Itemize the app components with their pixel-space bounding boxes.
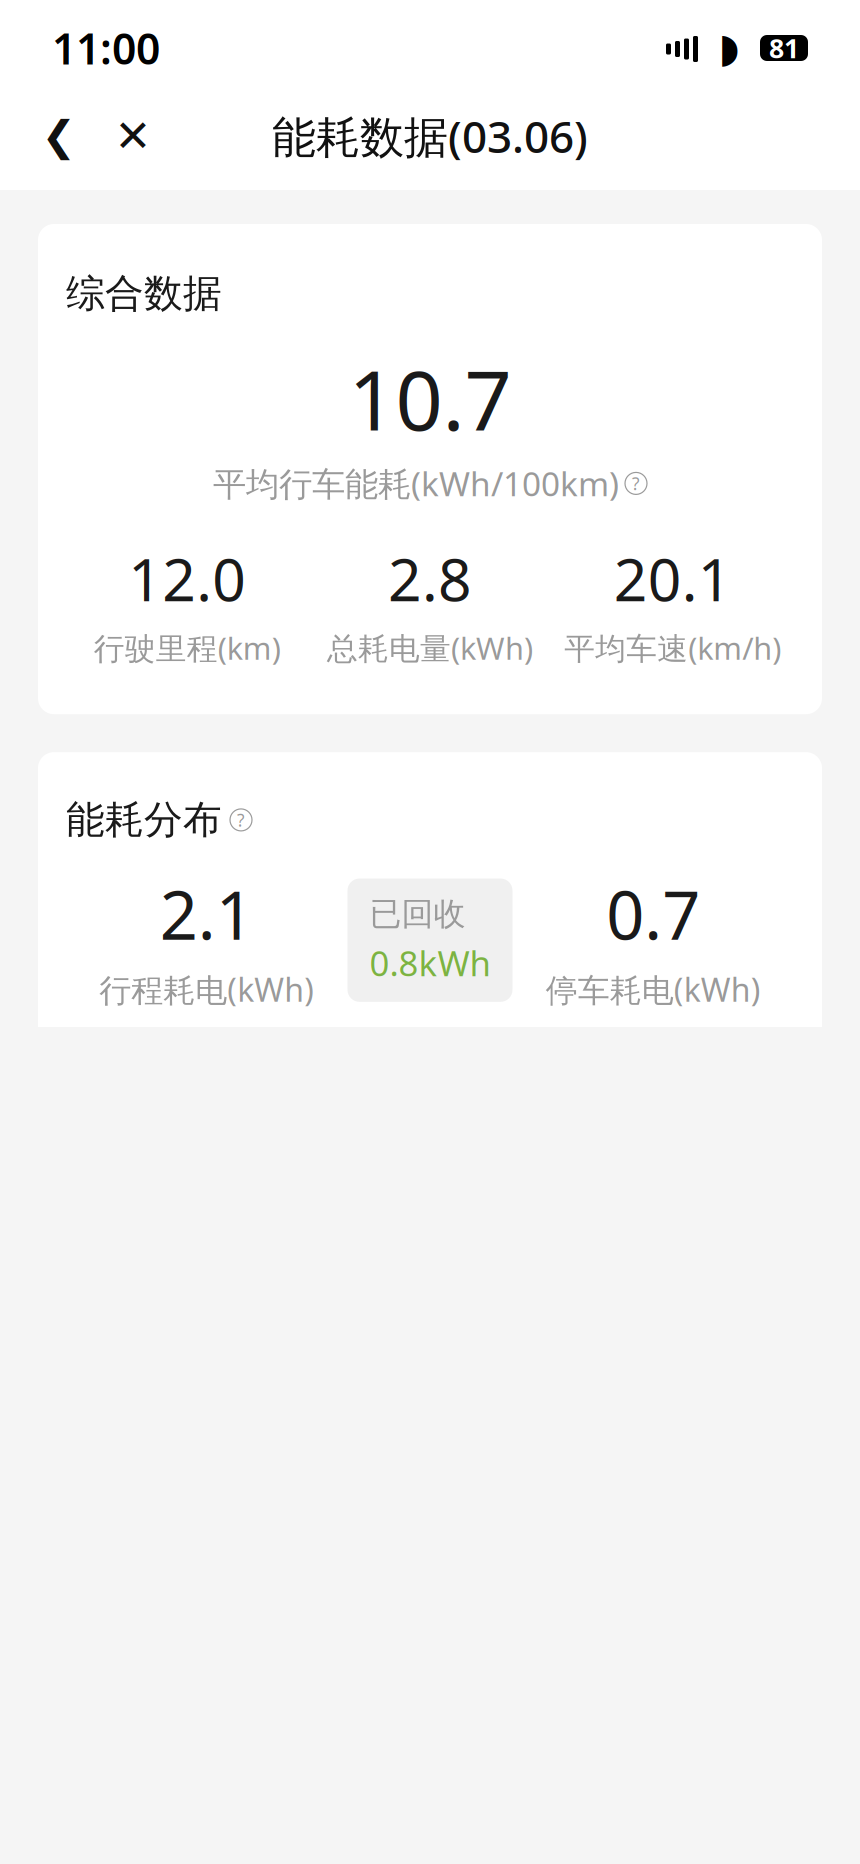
button[interactable]: Back	[36, 108, 82, 164]
staticText: 10.7	[348, 343, 511, 453]
staticText: 已回收	[369, 894, 465, 934]
button[interactable]: More information	[625, 472, 647, 494]
staticText: 平均车速(km/h)	[564, 627, 781, 668]
staticText: ?	[237, 808, 245, 831]
button[interactable]: More information	[230, 809, 252, 831]
button[interactable]: Close	[110, 108, 156, 164]
staticText: 综合数据	[66, 270, 222, 317]
staticText: 0.7	[606, 870, 700, 958]
staticText: 2.1	[160, 870, 254, 958]
staticText: ?	[632, 472, 640, 495]
staticText: ◗	[718, 25, 739, 71]
staticText: 2.8	[388, 539, 472, 617]
staticText: 11:00	[52, 20, 160, 76]
staticText: 20.1	[614, 539, 732, 617]
staticText: 能耗数据(03.06)	[272, 107, 588, 165]
staticText: 行程耗电(kWh)	[99, 968, 314, 1011]
staticText: 81	[769, 30, 799, 66]
staticText: 能耗分布	[66, 796, 222, 844]
staticText: 平均行车能耗(kWh/100km)	[213, 461, 619, 506]
staticText: 12.0	[128, 539, 246, 617]
staticText: 0.8kWh	[369, 940, 490, 986]
staticText: 行驶里程(km)	[94, 627, 281, 668]
staticText: ✕	[114, 111, 151, 161]
staticText: 停车耗电(kWh)	[546, 968, 761, 1011]
staticText: 总耗电量(kWh)	[327, 627, 533, 668]
staticText: ❮	[41, 112, 76, 159]
